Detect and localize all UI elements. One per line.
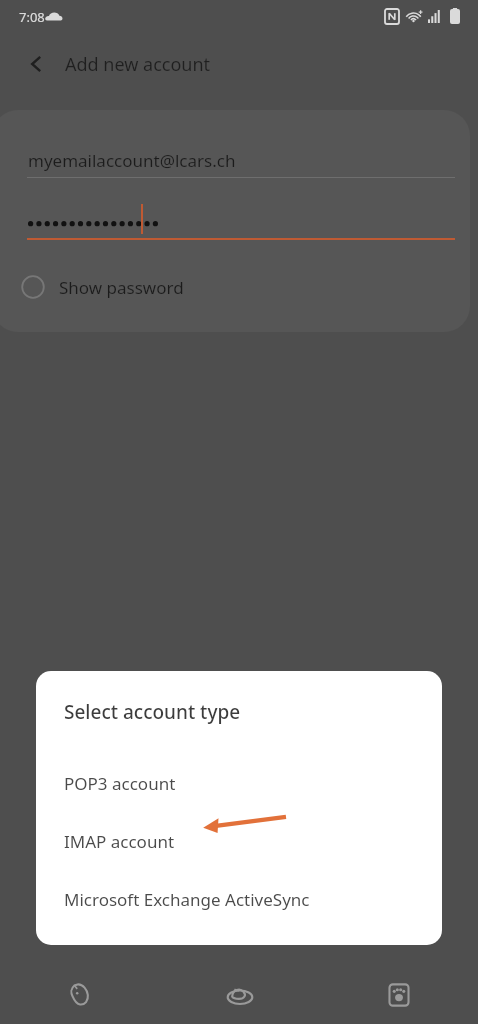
button[interactable]: POP3 account	[36, 761, 442, 805]
button[interactable]: IMAP account	[36, 819, 442, 863]
button[interactable]: Home	[160, 966, 319, 1024]
staticText: Select account type	[64, 699, 241, 725]
button[interactable]: Recents	[319, 966, 478, 1024]
staticText: Show password	[59, 276, 184, 299]
button[interactable]: Microsoft Exchange ActiveSync	[36, 877, 442, 921]
staticText: myemailaccount@lcars.ch	[28, 149, 236, 172]
button[interactable]: Back	[0, 966, 160, 1024]
staticText: 7:08	[19, 8, 45, 26]
staticText: POP3 account	[64, 772, 176, 795]
staticText: IMAP account	[64, 830, 175, 853]
staticText: Add new account	[65, 52, 211, 77]
button[interactable]: Back	[18, 45, 56, 83]
staticText: Microsoft Exchange ActiveSync	[64, 888, 310, 911]
button[interactable]: Show password	[12, 265, 242, 309]
